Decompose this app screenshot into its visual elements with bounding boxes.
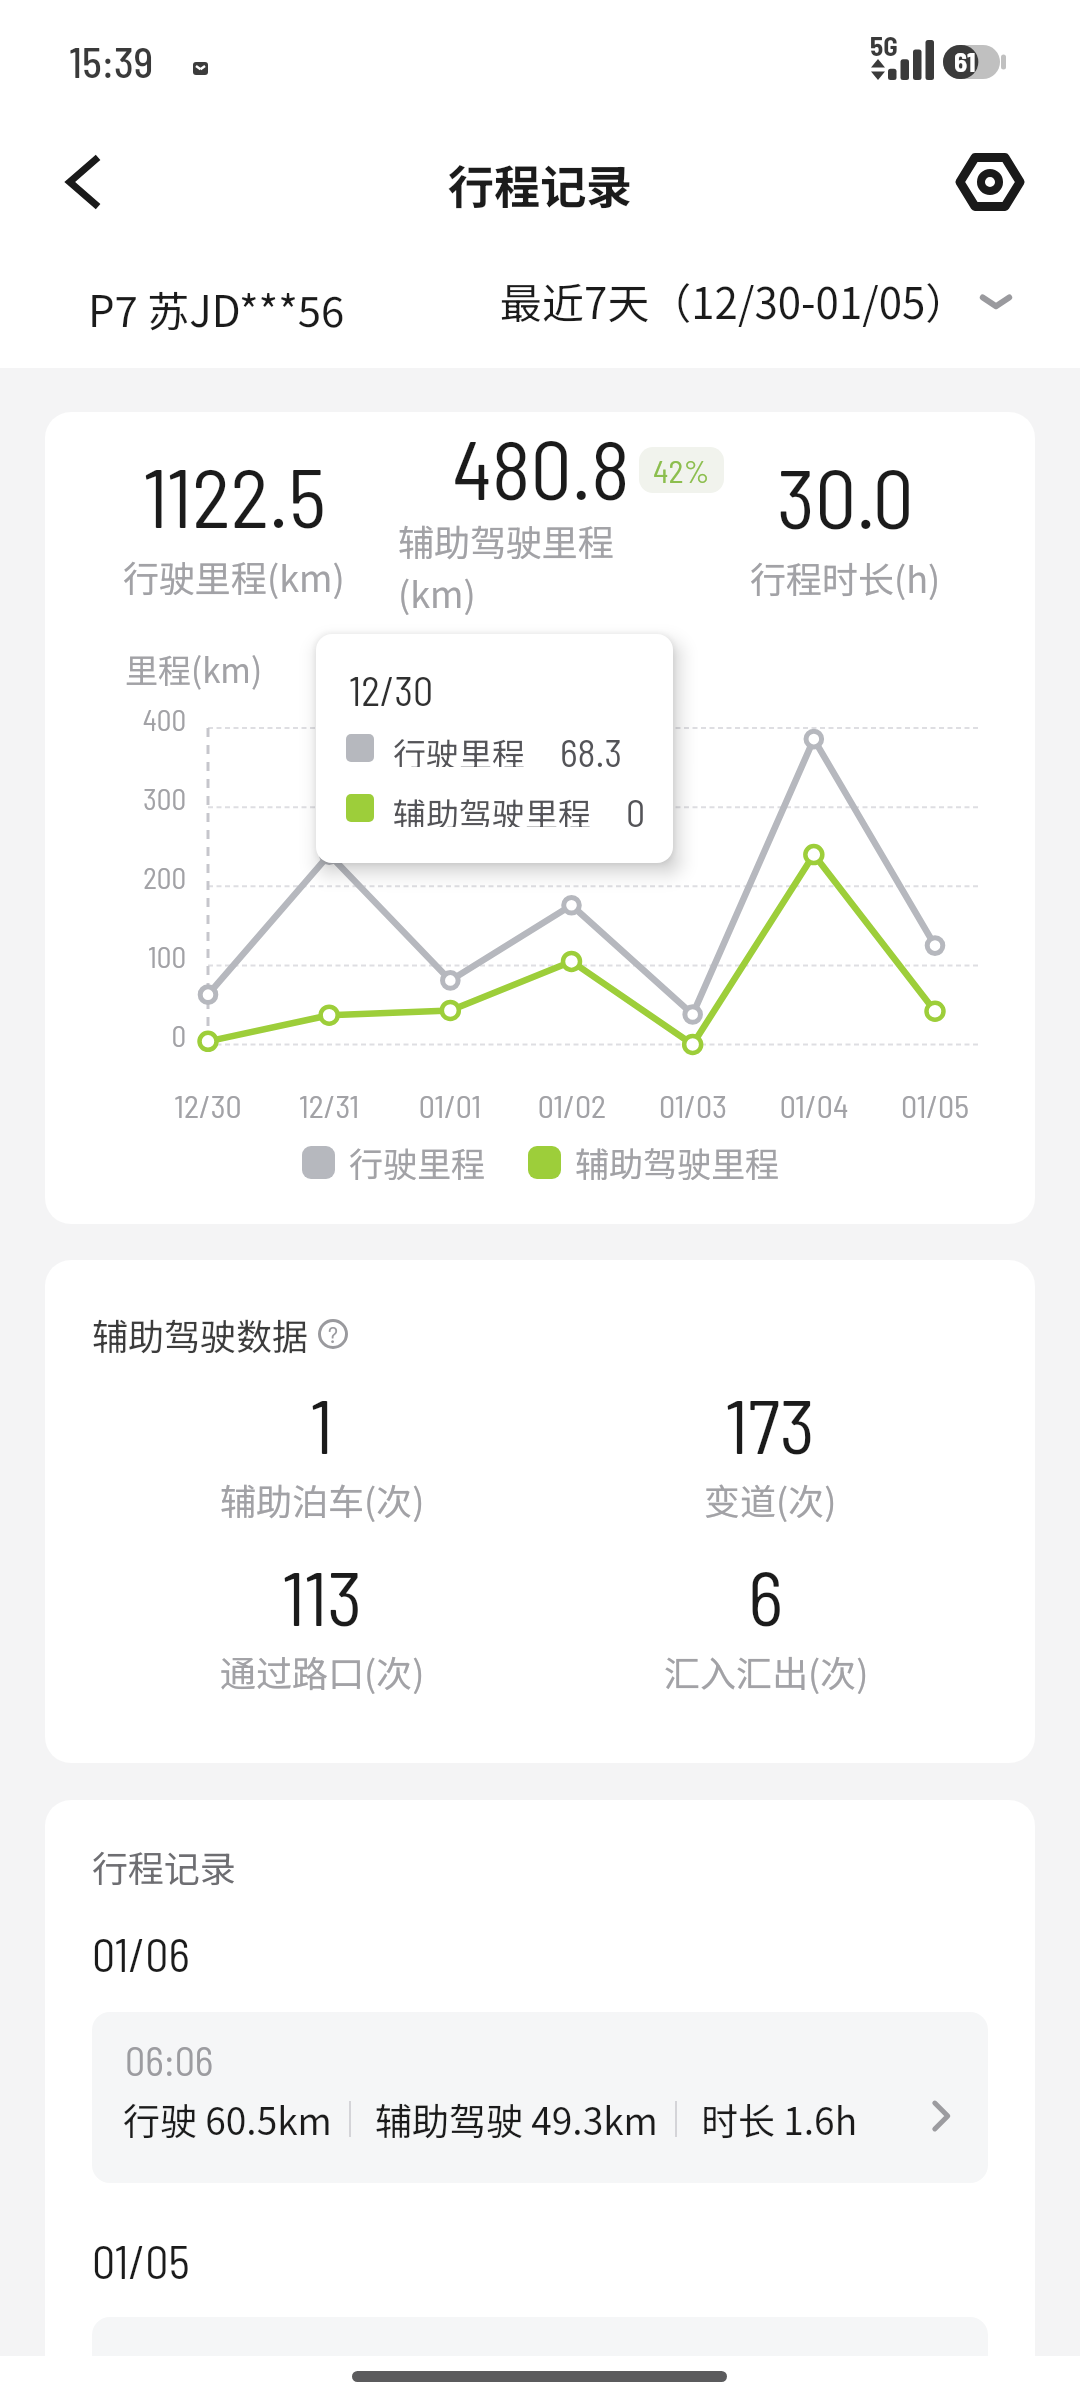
staticText: 辅助驾驶里程: [575, 1138, 779, 1187]
button[interactable]: 最近7天（12/30-01/05）: [500, 270, 1018, 331]
staticText: 行驶 60.5km: [123, 2092, 332, 2146]
staticText: 42%: [653, 451, 710, 489]
staticText: 辅助驾驶数据: [92, 1308, 309, 1360]
staticText: 通过路口(次): [220, 1645, 425, 1697]
staticText: 01/01: [390, 1086, 510, 1124]
staticText: 01/05: [92, 2233, 190, 2288]
staticText: 113: [282, 1550, 363, 1641]
staticText: 01/06: [92, 1926, 190, 1981]
staticText: 30.0: [777, 447, 914, 545]
staticText: 480.8: [341, 418, 741, 516]
staticText: 12/31: [269, 1086, 389, 1124]
staticText: 12/30: [148, 1086, 268, 1124]
staticText: 行驶里程: [393, 729, 525, 767]
staticText: 01/03: [633, 1086, 753, 1124]
staticText: 173: [725, 1378, 815, 1469]
staticText: ?: [328, 1319, 338, 1348]
staticText: 68.3: [560, 729, 622, 767]
staticText: 行驶里程(km): [123, 550, 345, 602]
staticText: 时长 1.6h: [701, 2092, 858, 2146]
staticText: 200: [83, 860, 186, 895]
staticText: 行程记录: [92, 1840, 237, 1892]
staticText: 最近7天（12/30-01/05）: [500, 270, 968, 331]
staticText: 0: [83, 1018, 186, 1053]
staticText: 行程时长(h): [750, 551, 941, 603]
staticText: 变道(次): [704, 1473, 837, 1525]
staticText: 里程(km): [125, 645, 263, 693]
staticText: 辅助驾驶里程: [393, 789, 591, 827]
button[interactable]: Settings: [940, 132, 1040, 232]
staticText: 5G: [870, 29, 898, 61]
button[interactable]: 06:06: [92, 2012, 988, 2183]
staticText: 100: [83, 939, 186, 974]
staticText: 1122.5: [143, 446, 326, 544]
staticText: 300: [83, 781, 186, 816]
staticText: 12/30: [349, 666, 434, 714]
button[interactable]: Back: [32, 132, 132, 232]
staticText: 15:39: [69, 36, 154, 86]
staticText: 辅助驾驶里程 (km): [398, 514, 615, 619]
staticText: 01/05: [875, 1086, 995, 1124]
staticText: 06:06: [125, 2036, 214, 2084]
staticText: 400: [83, 702, 186, 737]
button[interactable]: Help: [318, 1319, 348, 1349]
staticText: 01/02: [512, 1086, 632, 1124]
staticText: 辅助泊车(次): [220, 1473, 425, 1525]
staticText: 行驶里程: [349, 1138, 485, 1187]
staticText: 1: [310, 1378, 334, 1469]
staticText: 汇入汇出(次): [664, 1645, 869, 1697]
staticText: 辅助驾驶 49.3km: [375, 2092, 658, 2146]
staticText: 0: [626, 789, 646, 827]
button[interactable]: P7 苏JD***56: [88, 278, 345, 339]
staticText: 6: [748, 1550, 784, 1641]
staticText: 01/04: [754, 1086, 874, 1124]
staticText: 行程记录: [448, 151, 632, 218]
staticText: 61: [954, 45, 976, 77]
